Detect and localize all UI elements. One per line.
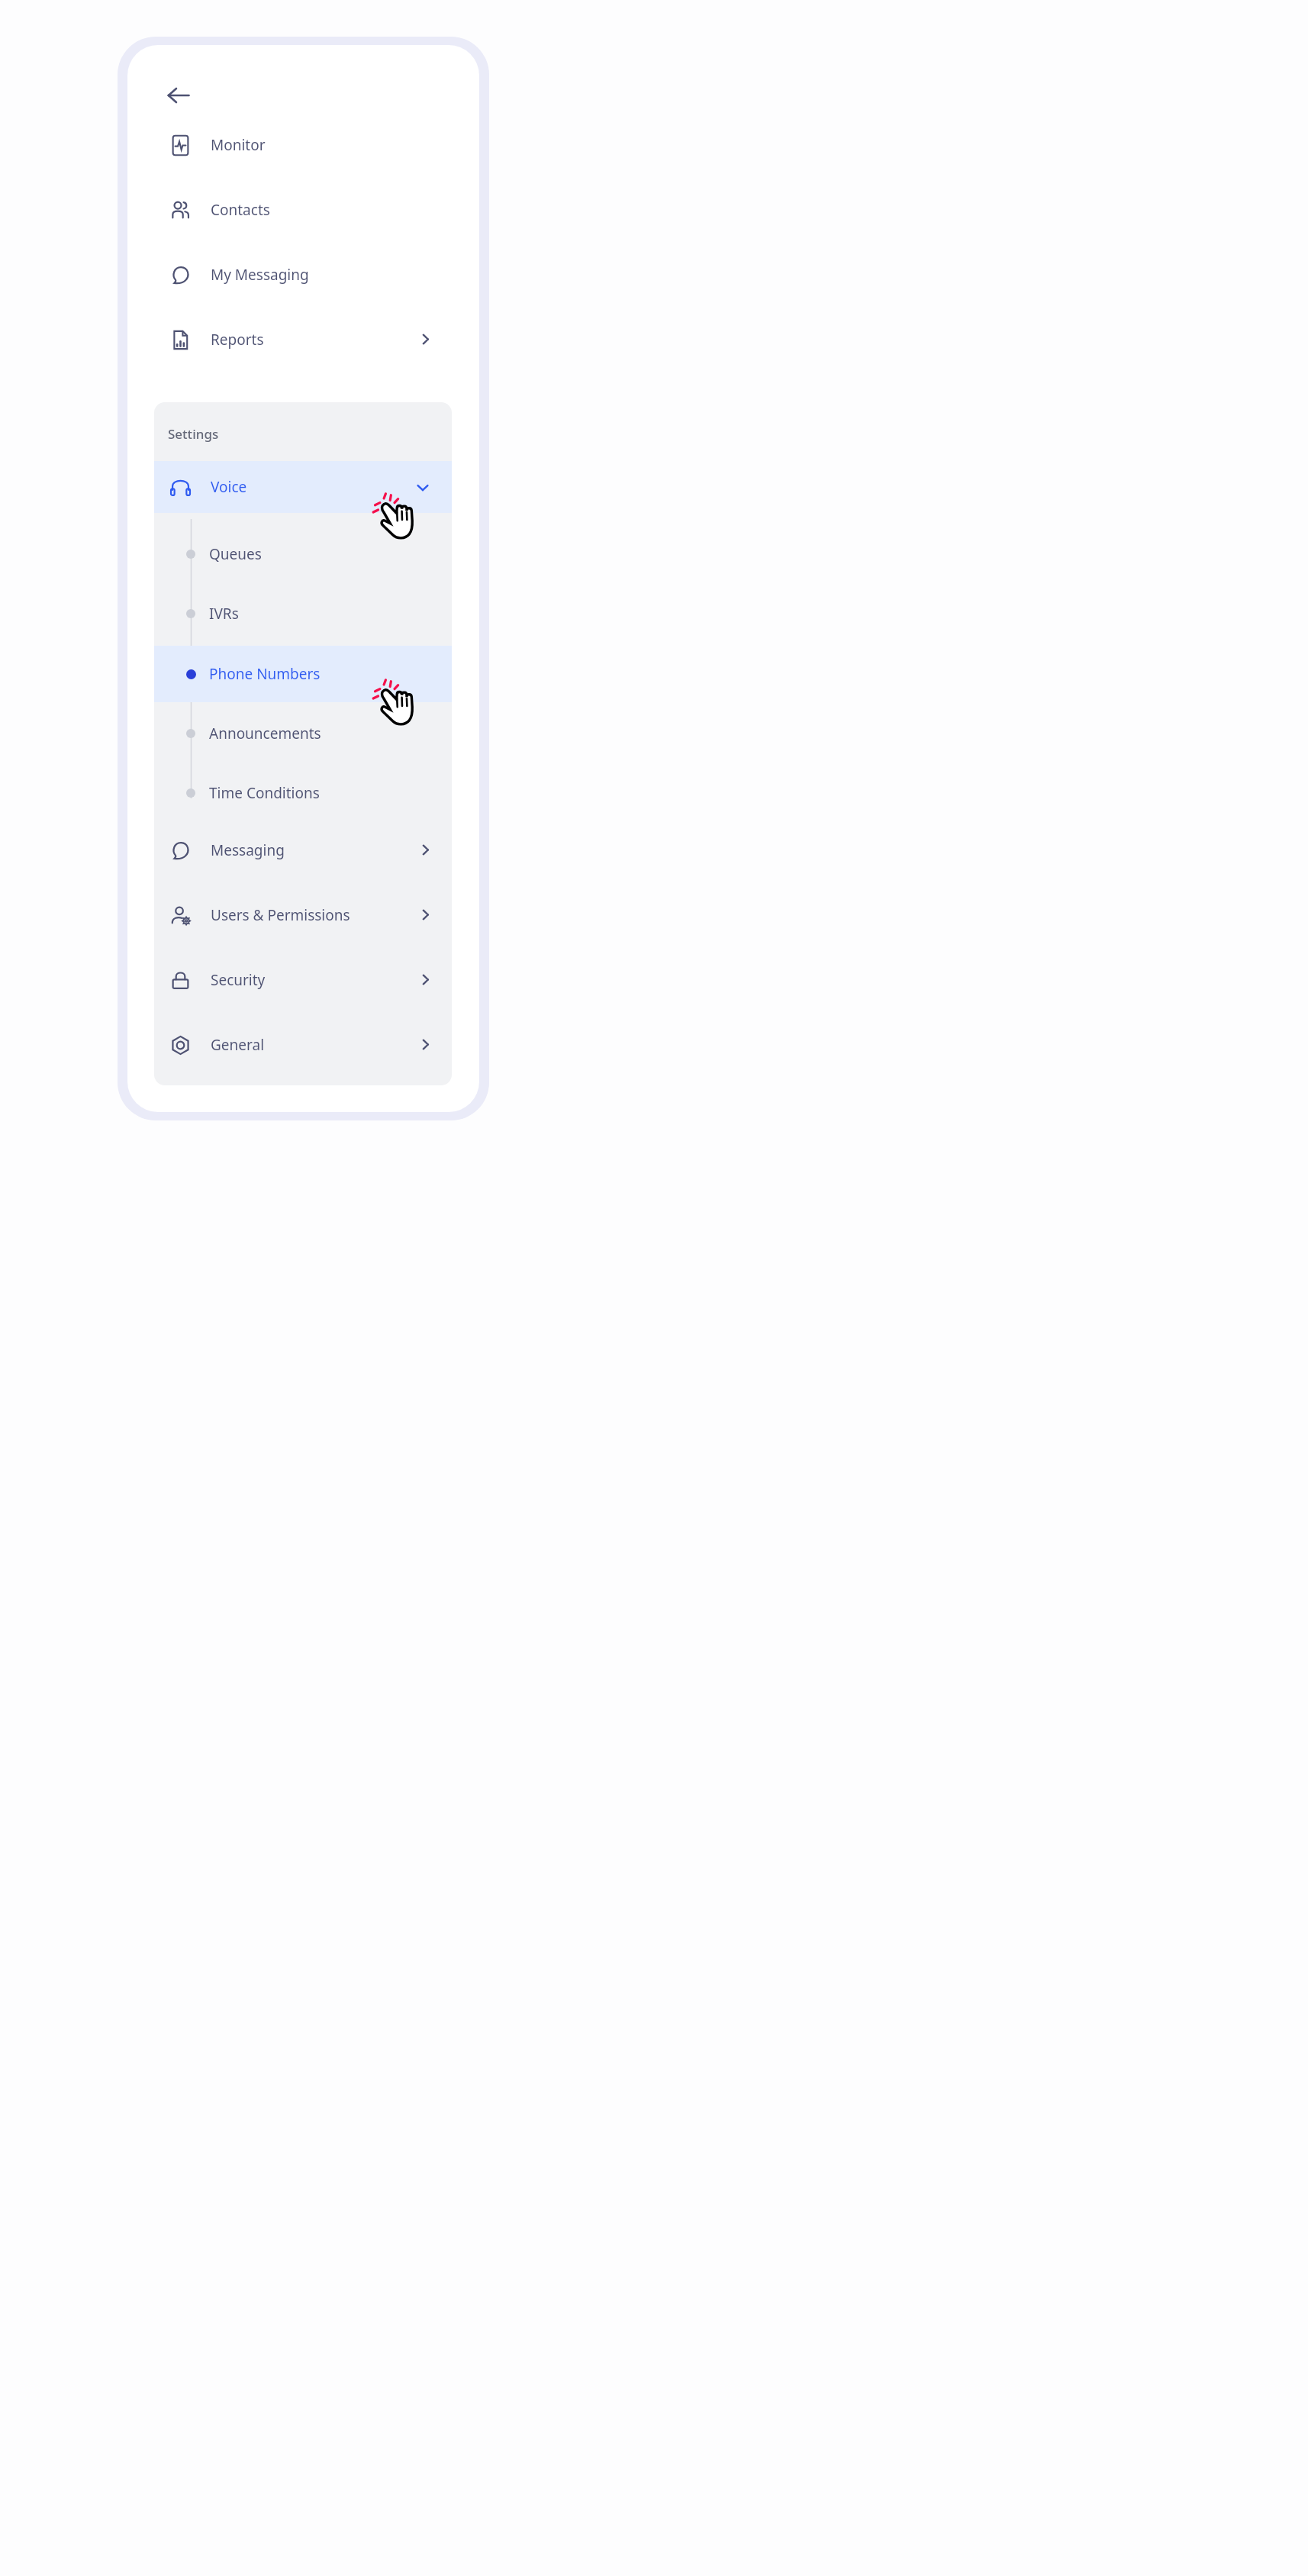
staticText: Contacts bbox=[211, 200, 270, 220]
button[interactable]: Voice bbox=[154, 461, 452, 513]
staticText: Announcements bbox=[209, 724, 321, 743]
button[interactable]: My Messaging bbox=[154, 249, 452, 301]
button[interactable]: Messaging bbox=[154, 824, 452, 876]
staticText: Queues bbox=[209, 544, 262, 564]
button[interactable]: Contacts bbox=[154, 184, 452, 236]
button[interactable]: Security bbox=[154, 954, 452, 1006]
staticText: General bbox=[211, 1035, 265, 1055]
button[interactable]: Phone Numbers bbox=[154, 648, 452, 700]
staticText: Settings bbox=[168, 425, 219, 443]
staticText: Reports bbox=[211, 330, 264, 350]
button[interactable]: General bbox=[154, 1019, 452, 1071]
button[interactable]: Users & Permissions bbox=[154, 889, 452, 941]
staticText: IVRs bbox=[209, 604, 239, 624]
button[interactable]: Queues bbox=[154, 528, 452, 580]
staticText: Voice bbox=[211, 477, 247, 497]
button[interactable]: IVRs bbox=[154, 588, 452, 640]
staticText: Time Conditions bbox=[209, 783, 320, 803]
staticText: Security bbox=[211, 970, 266, 990]
button[interactable]: Back bbox=[155, 72, 202, 119]
staticText: Monitor bbox=[211, 135, 266, 155]
button[interactable]: Reports bbox=[154, 314, 452, 366]
button[interactable]: Time Conditions bbox=[154, 767, 452, 819]
staticText: Messaging bbox=[211, 840, 285, 860]
button[interactable]: Announcements bbox=[154, 708, 452, 759]
button[interactable]: Monitor bbox=[154, 119, 452, 171]
staticText: My Messaging bbox=[211, 265, 309, 285]
staticText: Users & Permissions bbox=[211, 905, 350, 925]
staticText: Phone Numbers bbox=[209, 664, 321, 684]
